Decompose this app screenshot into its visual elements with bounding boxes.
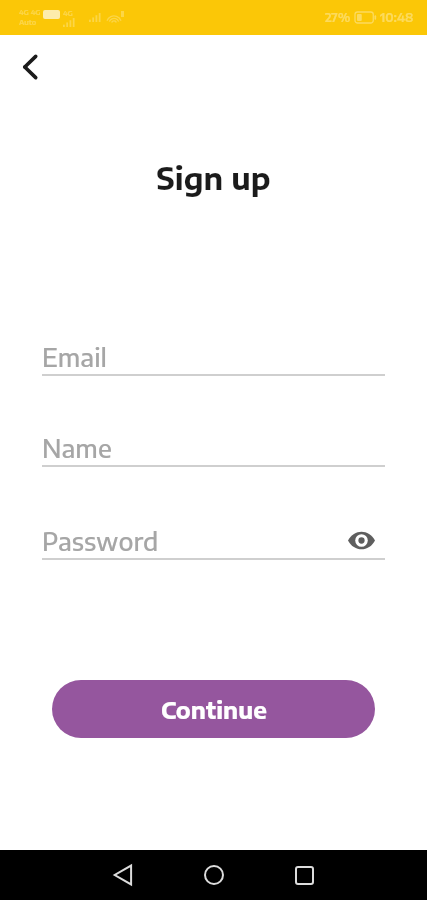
staticText: 4G 4G	[19, 8, 41, 17]
button[interactable]: Password	[42, 524, 385, 558]
staticText: Email	[42, 342, 107, 373]
staticText: Auto	[19, 18, 37, 27]
staticText: Name	[42, 433, 112, 464]
staticText: Continue	[161, 695, 267, 724]
button[interactable]: Show password	[344, 523, 378, 557]
button[interactable]: Name	[42, 431, 385, 465]
staticText: 27%	[325, 10, 351, 25]
button[interactable]: Home	[192, 853, 236, 897]
staticText: Password	[42, 526, 159, 557]
staticText: 4G	[63, 9, 73, 18]
staticText: Sign up	[0, 159, 427, 196]
button[interactable]: Email	[42, 340, 385, 374]
staticText: 10:48	[380, 10, 414, 25]
button[interactable]: Back	[101, 853, 145, 897]
button[interactable]: Recent apps	[282, 853, 326, 897]
button[interactable]: Back	[6, 43, 54, 91]
button[interactable]: Continue	[52, 680, 375, 738]
